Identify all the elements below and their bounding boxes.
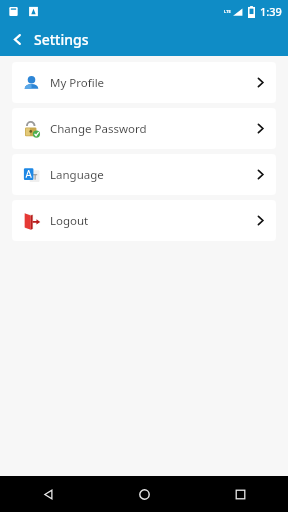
staticText: Change Password [50,121,147,137]
button[interactable]: My Profile [12,62,276,103]
button[interactable]: Recent apps [192,476,288,512]
staticText: My Profile [50,75,105,91]
button[interactable]: Back [0,22,34,56]
button[interactable]: Logout [12,200,276,241]
staticText: Logout [50,213,89,229]
staticText: LTE [224,9,231,14]
staticText: 1:39 [260,4,282,19]
staticText: Settings [34,30,89,49]
staticText: Language [50,167,104,183]
button[interactable]: Home [96,476,192,512]
button[interactable]: Change Password [12,108,276,149]
button[interactable]: Back [0,476,96,512]
button[interactable]: Language [12,154,276,195]
